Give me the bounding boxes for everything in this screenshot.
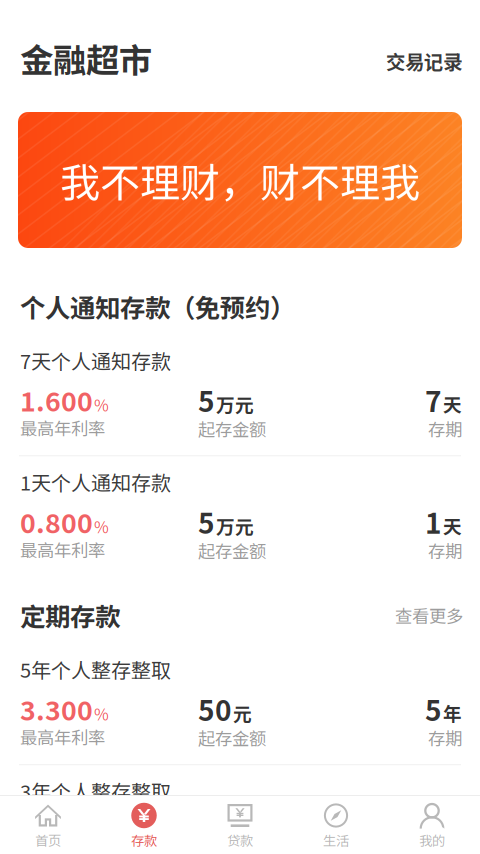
staticText: %	[94, 393, 109, 416]
staticText: 5	[198, 501, 215, 542]
staticText: 起存金额	[198, 538, 266, 563]
staticText: 存期	[428, 538, 462, 563]
staticText: %	[94, 515, 109, 538]
staticText: 天	[443, 512, 462, 539]
staticText: 1.600	[20, 381, 93, 419]
button[interactable]: 1天个人通知存款	[0, 458, 480, 577]
staticText: 首页	[35, 830, 61, 850]
staticText: 3	[425, 810, 442, 851]
button[interactable]: 生活	[288, 796, 384, 854]
staticText: 5年个人整存整取	[20, 655, 171, 684]
button[interactable]: 交易记录	[386, 34, 462, 81]
staticText: %	[94, 702, 109, 725]
staticText: 存款	[131, 830, 157, 850]
button[interactable]: 查看更多	[395, 599, 463, 632]
staticText: 最高年利率	[20, 724, 105, 749]
staticText: 起存金额	[198, 725, 266, 750]
staticText: 交易记录	[386, 47, 462, 75]
staticText: 3年个人整存整取	[20, 776, 171, 805]
button[interactable]: 5年个人整存整取	[0, 646, 480, 764]
staticText: 5	[425, 688, 442, 729]
button[interactable]: 贷款	[192, 796, 288, 854]
button[interactable]: 7天个人通知存款	[0, 337, 480, 455]
staticText: 2.900	[20, 811, 93, 850]
staticText: 存期	[428, 416, 462, 441]
staticText: 0.800	[20, 502, 93, 541]
staticText: 金融超市	[20, 34, 152, 82]
button[interactable]: 我的	[384, 796, 480, 854]
button[interactable]: 首页	[0, 796, 96, 854]
staticText: 最高年利率	[20, 415, 105, 440]
staticText: 最高年利率	[20, 537, 105, 562]
staticText: 起存金额	[198, 416, 266, 441]
staticText: 最高年利率	[20, 846, 105, 854]
staticText: 7天个人通知存款	[20, 346, 171, 375]
staticText: 我不理财，财不理我	[60, 151, 420, 209]
staticText: 1	[425, 501, 442, 542]
staticText: 7	[425, 380, 442, 420]
staticText: 元	[233, 821, 252, 848]
staticText: 天	[443, 390, 462, 417]
staticText: 3.300	[20, 689, 93, 728]
staticText: 贷款	[227, 830, 253, 850]
staticText: 元	[233, 699, 252, 726]
staticText: 5	[198, 380, 215, 420]
staticText: 我的	[419, 830, 445, 850]
staticText: 1天个人通知存款	[20, 467, 171, 496]
staticText: 年	[443, 821, 462, 848]
staticText: 年	[443, 699, 462, 726]
staticText: 50	[198, 810, 232, 851]
staticText: 定期存款	[20, 597, 120, 634]
staticText: 生活	[323, 830, 349, 850]
staticText: 万元	[216, 390, 254, 417]
button[interactable]: 存款	[96, 796, 192, 854]
staticText: 个人通知存款（免预约）	[20, 288, 295, 325]
staticText: 查看更多	[395, 603, 463, 628]
button[interactable]: 3年个人整存整取	[0, 767, 480, 854]
staticText: 万元	[216, 512, 254, 539]
staticText: 存期	[428, 725, 462, 750]
staticText: 50	[198, 688, 232, 729]
